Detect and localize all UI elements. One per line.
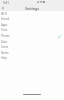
staticText: Theme [1, 34, 10, 38]
staticText: Time [1, 28, 8, 32]
button[interactable]: Notes [0, 50, 64, 56]
staticText: Sound [1, 17, 10, 21]
staticText: Data [1, 40, 7, 44]
staticText: Settings [25, 6, 39, 11]
staticText: Users [1, 45, 9, 49]
staticText: Apps [1, 23, 8, 27]
button[interactable]: Back [0, 5, 6, 11]
staticText: Help [1, 56, 7, 60]
button[interactable]: Apps [0, 22, 64, 28]
staticText: Notes [1, 51, 9, 55]
button[interactable]: Wi-Fi [0, 11, 64, 17]
staticText: 9:41 [3, 1, 9, 5]
button[interactable]: Data [0, 39, 64, 45]
staticText: Wi-Fi [1, 12, 8, 16]
button[interactable]: Help [0, 55, 64, 61]
button[interactable]: Users [0, 44, 64, 50]
button[interactable]: Sound [0, 16, 64, 22]
button[interactable]: Theme [0, 33, 64, 39]
button[interactable]: Time [0, 27, 64, 33]
